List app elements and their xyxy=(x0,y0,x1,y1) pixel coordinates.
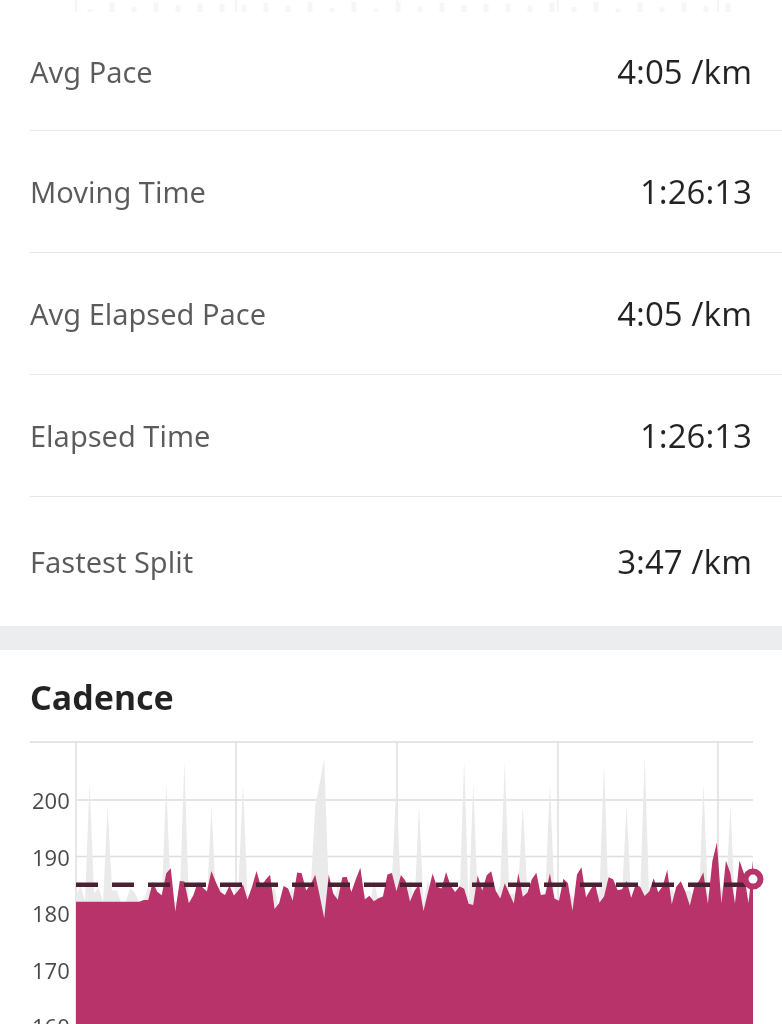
staticText: 1:26:13 xyxy=(639,169,752,214)
staticText: 1:26:13 xyxy=(639,413,752,458)
button[interactable]: Elapsed Time xyxy=(0,375,782,496)
staticText: 3:47 /km xyxy=(617,539,752,584)
staticText: 4:05 /km xyxy=(617,49,752,94)
other: Cadence chart xyxy=(0,742,782,1024)
staticText: Elapsed Time xyxy=(30,416,211,455)
button[interactable]: Avg Elapsed Pace xyxy=(0,253,782,374)
staticText: Avg Elapsed Pace xyxy=(30,294,267,333)
staticText: Fastest Split xyxy=(30,542,194,581)
staticText: 4:05 /km xyxy=(617,291,752,336)
button[interactable]: Fastest Split xyxy=(0,497,782,626)
staticText: Cadence xyxy=(30,674,174,720)
staticText: Moving Time xyxy=(30,172,206,211)
button[interactable]: Moving Time xyxy=(0,131,782,252)
staticText: Avg Pace xyxy=(30,52,153,91)
button[interactable]: Avg Pace xyxy=(0,12,782,130)
